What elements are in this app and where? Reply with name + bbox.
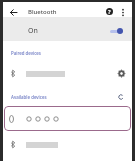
button[interactable]: On [3, 17, 132, 41]
button[interactable]: Help [101, 7, 114, 17]
staticText: Paired devices [11, 50, 41, 56]
staticText: ? [108, 8, 111, 15]
staticText: On [28, 26, 38, 36]
staticText: Bluetooth [28, 8, 57, 16]
button[interactable]: More options [114, 7, 132, 17]
button[interactable]: Back [3, 7, 24, 17]
button[interactable] [4, 106, 131, 131]
button[interactable] [3, 134, 132, 155]
button[interactable]: Device settings [3, 63, 132, 84]
staticText: Available devices [11, 94, 47, 100]
button[interactable]: Device settings [116, 68, 126, 78]
